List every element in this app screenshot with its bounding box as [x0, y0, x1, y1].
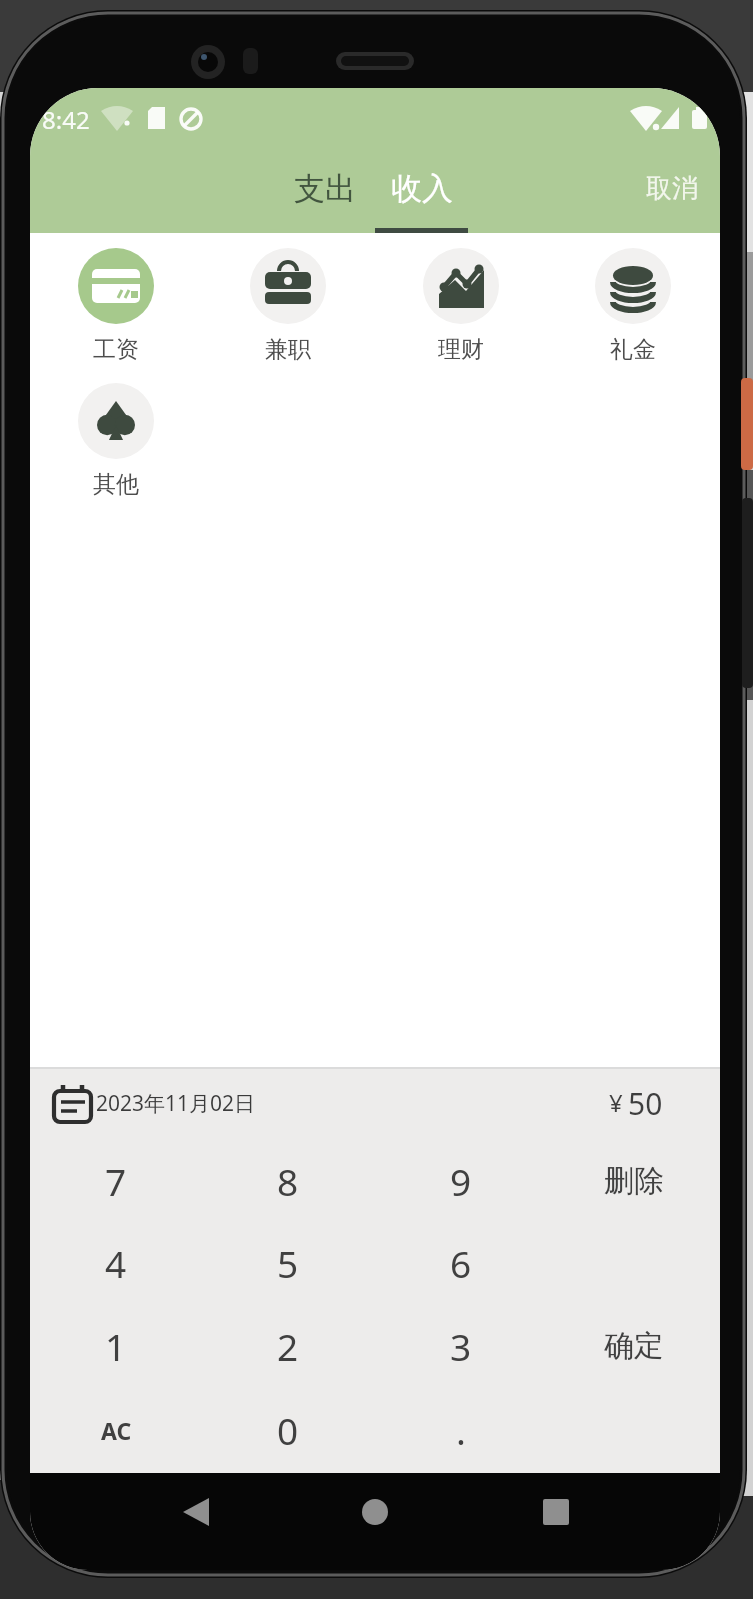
staticText: 8 [277, 1156, 299, 1206]
staticText: 1 [105, 1321, 127, 1371]
staticText: 9 [450, 1156, 472, 1206]
button[interactable] [146, 1473, 246, 1570]
button[interactable]: 8 [202, 1140, 374, 1222]
button[interactable]: 0 [202, 1389, 374, 1471]
button[interactable] [506, 1473, 606, 1570]
button[interactable]: 取消 [607, 160, 720, 216]
button[interactable]: 确定 [548, 1305, 720, 1387]
button[interactable]: 删除 [548, 1140, 720, 1222]
button[interactable]: 1 [30, 1305, 202, 1387]
staticText: 礼金 [610, 335, 656, 364]
staticText: 2 [277, 1321, 299, 1371]
staticText: AC [101, 1415, 132, 1446]
staticText: 50 [628, 1083, 663, 1124]
staticText: 支出 [294, 169, 356, 208]
staticText: 4 [105, 1238, 127, 1288]
staticText: 兼职 [265, 335, 311, 364]
button[interactable]: AC [30, 1389, 202, 1471]
button[interactable] [61, 242, 171, 382]
button[interactable]: 3 [375, 1305, 547, 1387]
button[interactable] [578, 242, 688, 382]
staticText: 收入 [391, 169, 453, 208]
button[interactable]: 2 [202, 1305, 374, 1387]
staticText: 2023年11月02日 [96, 1089, 256, 1118]
button[interactable]: 9 [375, 1140, 547, 1222]
button[interactable] [325, 1473, 425, 1570]
button[interactable] [406, 242, 516, 382]
staticText: 确定 [604, 1327, 664, 1365]
button[interactable]: 5 [202, 1222, 374, 1304]
staticText: 理财 [438, 335, 484, 364]
button[interactable]: 2023年11月02日 [30, 1069, 720, 1137]
button[interactable]: 收入 [347, 160, 497, 216]
button[interactable]: 支出 [250, 160, 400, 216]
staticText: 7 [105, 1156, 127, 1206]
staticText: 工资 [93, 335, 139, 364]
staticText: . [456, 1405, 466, 1455]
staticText: 5 [277, 1238, 299, 1288]
staticText: 取消 [646, 172, 698, 205]
staticText: 其他 [93, 470, 139, 499]
button[interactable]: . [375, 1389, 547, 1471]
button[interactable]: 6 [375, 1222, 547, 1304]
button[interactable]: 4 [30, 1222, 202, 1304]
staticText: 6 [450, 1238, 472, 1288]
staticText: ¥ [609, 1086, 623, 1119]
button[interactable] [233, 242, 343, 382]
staticText: 删除 [604, 1162, 664, 1200]
staticText: 0 [277, 1405, 299, 1455]
staticText: 3 [450, 1321, 472, 1371]
button[interactable] [61, 377, 171, 517]
button[interactable]: 7 [30, 1140, 202, 1222]
staticText: 8:42 [42, 103, 90, 136]
